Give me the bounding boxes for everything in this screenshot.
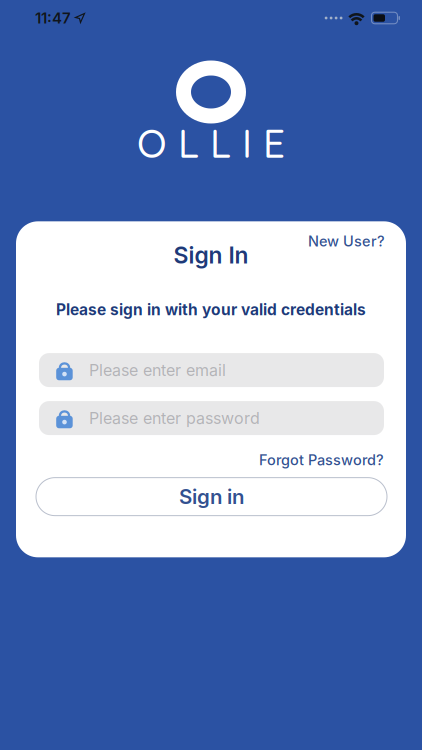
staticText: Forgot Password? <box>259 451 384 469</box>
staticText: O L L I E <box>137 119 285 167</box>
button[interactable]: Please enter email <box>39 353 384 387</box>
staticText: New User? <box>308 232 385 250</box>
staticText: Please sign in with your valid credentia… <box>56 300 366 319</box>
staticText: Please enter password <box>89 408 260 428</box>
button[interactable]: Please enter password <box>39 401 384 435</box>
button[interactable]: New User? <box>308 232 385 250</box>
staticText: Sign In <box>173 241 248 269</box>
button[interactable]: Sign in <box>36 478 387 516</box>
staticText: 11:47 <box>35 9 71 27</box>
button[interactable]: Forgot Password? <box>259 451 384 469</box>
staticText: Please enter email <box>89 360 226 380</box>
staticText: Sign in <box>179 484 244 509</box>
